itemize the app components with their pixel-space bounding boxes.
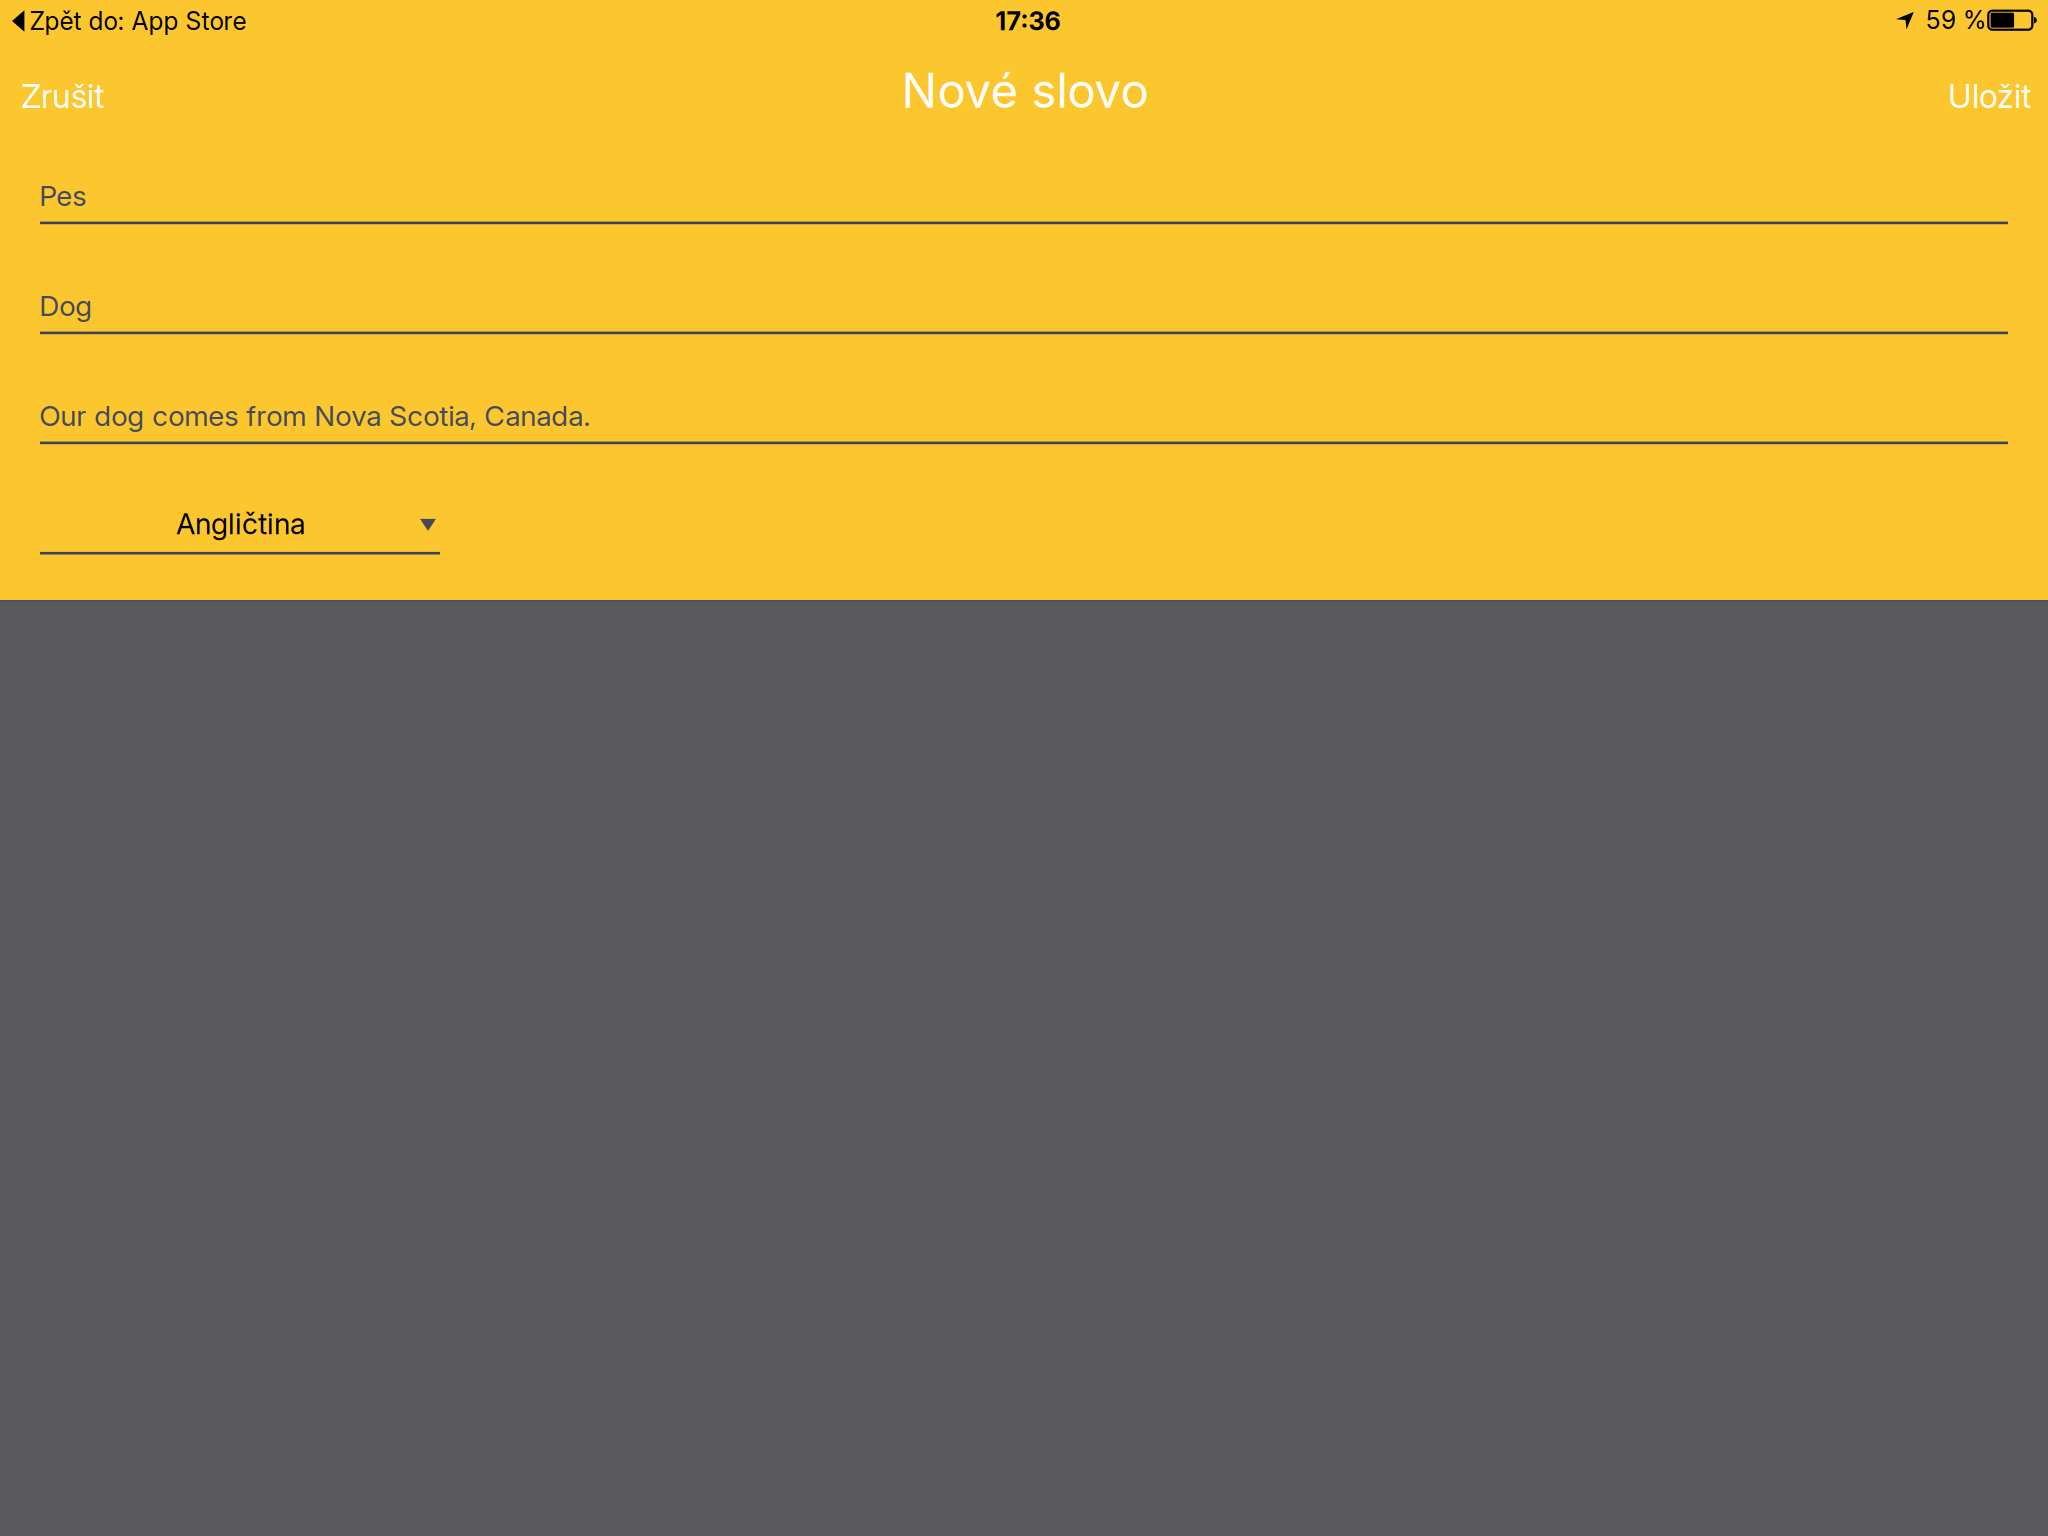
button[interactable]: Pes [40, 121, 2008, 225]
staticText: Dog [39, 288, 92, 323]
staticText: Zrušit [21, 76, 104, 116]
staticText: Uložit [1948, 76, 2031, 116]
button[interactable]: Our dog comes from Nova Scotia, Canada. [40, 341, 2008, 445]
button[interactable]: Uložit [1911, 66, 2031, 126]
staticText: Angličtina [176, 507, 306, 541]
staticText: Nové slovo [901, 62, 1148, 119]
staticText: Pes [39, 178, 86, 213]
staticText: Zpět do: App Store [29, 6, 246, 36]
staticText: 17:36 [995, 6, 1060, 36]
button[interactable]: Angličtina [40, 451, 440, 555]
staticText: Our dog comes from Nova Scotia, Canada. [39, 398, 590, 433]
button[interactable]: Zrušit [21, 66, 141, 126]
button[interactable]: Zpět do: App Store [12, 1, 262, 41]
button[interactable]: Dog [40, 231, 2008, 335]
staticText: 59 % [1926, 5, 1986, 35]
